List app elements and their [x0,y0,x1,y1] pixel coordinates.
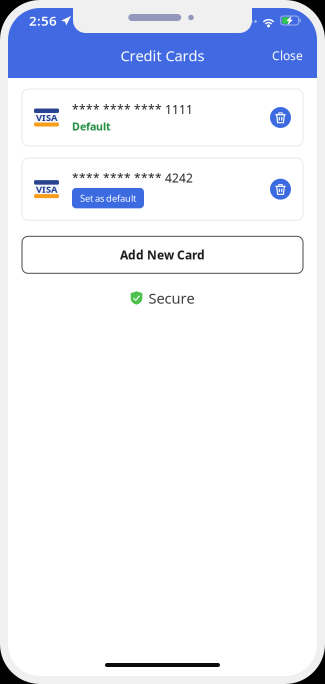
button[interactable]: Set as default [72,188,144,208]
button[interactable]: Close [264,41,311,69]
staticText: Default [72,119,111,134]
staticText: VISA [36,183,57,195]
staticText: Set as default [80,192,136,204]
staticText: Close [272,47,303,63]
staticText: Secure [148,288,194,308]
button[interactable]: Delete card [270,179,291,200]
staticText: **** **** **** 1111 [72,101,193,117]
button[interactable]: Delete card [270,107,291,128]
staticText: **** **** **** 4242 [72,170,193,186]
staticText: Credit Cards [120,46,204,65]
staticText: Add New Card [120,247,205,263]
button[interactable]: Add New Card [22,236,303,273]
staticText: 2:56 [29,12,57,29]
staticText: VISA [36,111,57,124]
